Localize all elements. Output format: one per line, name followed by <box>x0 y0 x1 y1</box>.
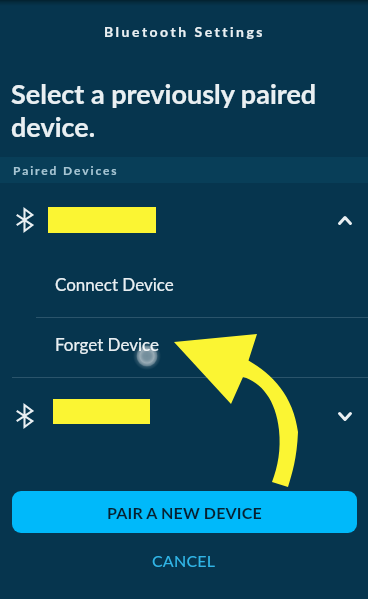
button[interactable]: Forget Device <box>0 317 368 370</box>
button[interactable]: Connect Device <box>0 255 368 313</box>
button[interactable]: Collapse <box>323 198 367 242</box>
button[interactable]: PAIR A NEW DEVICE <box>12 491 357 533</box>
staticText: PAIR A NEW DEVICE <box>107 503 262 522</box>
button[interactable]: Expand <box>0 386 368 444</box>
button[interactable]: Collapse <box>0 190 368 250</box>
staticText: Bluetooth Settings <box>104 23 265 40</box>
button[interactable]: Expand <box>323 394 367 438</box>
button[interactable]: CANCEL <box>0 542 368 578</box>
staticText: Forget Device <box>55 334 159 354</box>
staticText: CANCEL <box>152 551 216 570</box>
staticText: Select a previously paired device. <box>11 77 368 143</box>
staticText: Paired Devices <box>13 163 119 177</box>
staticText: Connect Device <box>55 274 174 294</box>
